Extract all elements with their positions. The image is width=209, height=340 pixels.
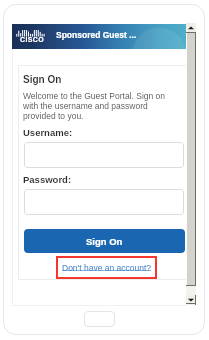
button[interactable]: Sign On xyxy=(24,229,185,253)
staticText: Sponsored Guest ... xyxy=(56,30,137,39)
button[interactable] xyxy=(186,295,196,305)
button[interactable]: Home xyxy=(84,311,115,327)
staticText: Username: xyxy=(23,127,73,138)
staticText: Sign On xyxy=(23,74,62,85)
staticText: Password: xyxy=(23,174,72,185)
button[interactable] xyxy=(24,189,184,215)
button[interactable] xyxy=(24,142,184,168)
button[interactable] xyxy=(186,23,196,32)
staticText: Welcome to the Guest Portal. Sign on wit… xyxy=(23,91,171,121)
other: Scroll bar xyxy=(186,23,196,305)
staticText: Sign On xyxy=(86,236,123,247)
staticText: Don't have an account? xyxy=(62,263,152,272)
button[interactable]: Don't have an account? xyxy=(56,256,157,279)
staticText: CISCO xyxy=(20,36,45,44)
